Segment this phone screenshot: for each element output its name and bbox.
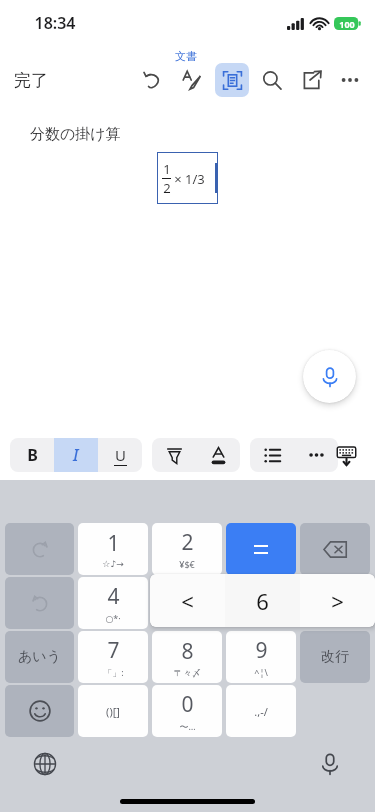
button[interactable]: Markup	[175, 63, 209, 97]
button[interactable]	[226, 523, 296, 575]
staticText: 4	[107, 582, 120, 611]
staticText: 完了	[14, 70, 48, 91]
button[interactable]: 0	[152, 685, 222, 737]
button[interactable]	[300, 577, 370, 629]
button[interactable]: 2	[152, 523, 222, 575]
staticText: ○*·	[105, 612, 121, 624]
button[interactable]: あいう	[5, 631, 74, 683]
button[interactable]: Dictation	[303, 350, 356, 403]
staticText: 8	[181, 637, 194, 666]
staticText: 18:34	[34, 12, 76, 34]
staticText: 「」:	[103, 666, 124, 678]
staticText: B	[27, 444, 38, 466]
button[interactable]: <	[150, 574, 225, 627]
button[interactable]: 7	[78, 631, 148, 683]
staticText: .,-/	[254, 704, 268, 719]
button[interactable]: Text color	[196, 438, 240, 472]
staticText: <	[181, 586, 194, 616]
button[interactable]: Hide keyboard	[329, 438, 363, 472]
staticText: >	[331, 586, 344, 616]
button[interactable]: Emoji	[5, 685, 74, 737]
button[interactable]: List	[250, 438, 294, 472]
button[interactable]: Undo	[135, 63, 169, 97]
button[interactable]: Bold	[10, 438, 54, 472]
staticText: 9	[255, 636, 268, 665]
button[interactable]: Dictation	[311, 745, 349, 783]
staticText: I	[73, 444, 79, 466]
staticText: × 1/3	[174, 170, 205, 188]
button[interactable]: Highlight	[152, 438, 196, 472]
staticText: 改行	[321, 648, 349, 666]
staticText: あいう	[18, 648, 61, 666]
button[interactable]: Search	[255, 63, 289, 97]
staticText: ()[]	[106, 704, 120, 719]
staticText: 〜…	[179, 720, 196, 732]
button[interactable]: Document	[215, 63, 249, 97]
button[interactable]: 4	[78, 577, 148, 629]
button[interactable]: Change keyboard	[26, 745, 64, 783]
button[interactable]: More	[333, 63, 367, 97]
staticText: U	[115, 445, 126, 465]
button[interactable]: Redo	[5, 523, 74, 575]
button[interactable]: 改行	[300, 631, 370, 683]
staticText: 文書	[175, 49, 197, 63]
staticText: 2	[163, 179, 171, 197]
staticText: 2	[181, 528, 194, 557]
button[interactable]: 完了	[0, 64, 58, 97]
button[interactable]	[152, 577, 222, 629]
staticText: ☆♪→	[102, 559, 124, 569]
staticText: 100	[339, 18, 355, 30]
staticText: 1	[163, 160, 171, 178]
button[interactable]: >	[300, 574, 375, 627]
staticText: 〒々〆	[174, 667, 201, 678]
button[interactable]: ()[]	[78, 685, 148, 737]
button[interactable]: Italic	[54, 438, 98, 472]
staticText: 分数の掛け算	[30, 125, 121, 144]
button[interactable]: 8	[152, 631, 222, 683]
staticText: ^¦\	[254, 666, 268, 678]
button[interactable]: Underline	[98, 438, 142, 472]
button[interactable]: 1	[78, 523, 148, 575]
button[interactable]: More format	[294, 438, 338, 472]
button[interactable]	[226, 577, 296, 629]
button[interactable]: 9	[226, 631, 296, 683]
button[interactable]: 6	[225, 574, 300, 627]
staticText: ¥$€	[179, 558, 195, 570]
button[interactable]: Delete	[300, 523, 370, 575]
staticText: 0	[181, 690, 194, 719]
button[interactable]: Undo	[5, 577, 74, 629]
button[interactable]: Share	[295, 63, 329, 97]
button[interactable]: .,-/	[226, 685, 296, 737]
button[interactable]: 1	[157, 152, 218, 204]
staticText: 1	[107, 529, 120, 558]
staticText: 6	[256, 586, 269, 616]
staticText: 7	[107, 636, 120, 665]
